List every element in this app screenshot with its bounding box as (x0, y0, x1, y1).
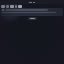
button[interactable]: Open (28, 17, 37, 20)
button[interactable] (0, 4, 64, 8)
button[interactable]: Status (1, 8, 63, 16)
